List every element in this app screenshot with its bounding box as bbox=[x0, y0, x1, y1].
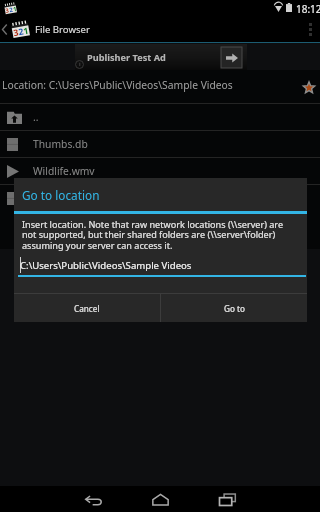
button[interactable]: C:\Users\Public\Videos\Sample Videos bbox=[14, 256, 307, 277]
button[interactable]: Wildlife.jpg bbox=[0, 185, 320, 211]
button[interactable]: Wildlife.wmv bbox=[0, 158, 320, 184]
staticText: Thumbs.db bbox=[33, 137, 88, 151]
button[interactable]: More options bbox=[300, 16, 320, 42]
staticText: Cancel bbox=[74, 303, 100, 314]
staticText: 3 bbox=[5, 6, 10, 15]
staticText: Location: C:\Users\Public\Videos\Sample … bbox=[2, 78, 233, 92]
button[interactable]: Back bbox=[60, 486, 127, 512]
staticText: 2 bbox=[9, 6, 14, 14]
button[interactable]: .. bbox=[0, 104, 320, 130]
staticText: .. bbox=[33, 110, 39, 124]
button[interactable]: Publisher Test Ad bbox=[75, 44, 247, 70]
button[interactable]: Up bbox=[0, 16, 30, 42]
staticText: File Browser bbox=[35, 23, 90, 36]
staticText: C:\Users\Public\Videos\Sample Videos bbox=[20, 259, 192, 272]
button[interactable]: Recents bbox=[194, 486, 261, 512]
staticText: 2 bbox=[17, 26, 24, 38]
staticText: Insert location. Note that raw network l… bbox=[22, 218, 299, 252]
button[interactable]: Thumbs.db bbox=[0, 131, 320, 157]
staticText: 1 bbox=[22, 25, 29, 37]
staticText: 18:12 bbox=[296, 2, 320, 16]
staticText: Publisher Test Ad bbox=[87, 51, 166, 64]
button[interactable]: Go to bbox=[161, 294, 307, 322]
button[interactable]: Favorite bbox=[302, 80, 316, 94]
button[interactable]: Home bbox=[127, 486, 194, 512]
staticText: Go to bbox=[224, 303, 245, 314]
staticText: 3 bbox=[12, 26, 19, 39]
staticText: Go to location bbox=[22, 187, 100, 203]
staticText: Wildlife.jpg bbox=[33, 191, 87, 205]
staticText: Wildlife.wmv bbox=[33, 164, 95, 178]
button[interactable]: Cancel bbox=[14, 294, 160, 322]
staticText: 1 bbox=[12, 5, 18, 13]
